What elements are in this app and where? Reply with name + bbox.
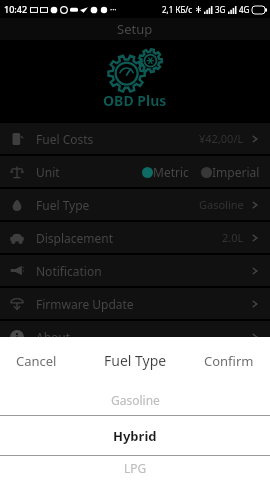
button[interactable]: Imperial [201, 164, 260, 180]
staticText: Gasoline [199, 197, 244, 212]
staticText: Fuel Costs [36, 131, 94, 147]
staticText: Setup [117, 20, 153, 38]
staticText: Confirm [204, 352, 254, 370]
other: Unit [10, 165, 24, 179]
staticText: Fuel Type [36, 197, 90, 213]
button[interactable]: Metric [142, 164, 189, 180]
staticText: Fuel Type [104, 351, 167, 370]
button[interactable]: Hybrid [0, 416, 270, 455]
button[interactable]: Confirm [188, 342, 270, 380]
staticText: About [36, 329, 71, 345]
staticText: ¥42,00/L [199, 131, 244, 146]
staticText: Cancel [16, 352, 57, 370]
staticText: LPG [124, 460, 147, 476]
button[interactable]: Notification [0, 255, 270, 286]
button[interactable]: Unit [0, 156, 270, 187]
other: Firmware update [10, 297, 24, 311]
staticText: 10:42 [4, 3, 28, 15]
staticText: Displacement [36, 230, 114, 246]
staticText: ··· [110, 4, 117, 15]
other: Displacement [10, 231, 24, 245]
staticText: Firmware Update [36, 296, 134, 312]
staticText: 2,1 КБ/c [162, 4, 193, 15]
staticText: 4G [239, 4, 250, 15]
staticText: Notification [36, 263, 102, 279]
button[interactable]: Firmware update [0, 288, 270, 319]
other: Notification [10, 264, 24, 278]
button[interactable]: Cancel [0, 342, 73, 380]
button[interactable]: LPG [0, 456, 270, 480]
staticText: Metric [153, 164, 189, 180]
staticText: OBD Plus [103, 91, 167, 110]
staticText: Imperial [212, 164, 260, 180]
staticText: 3G [215, 4, 226, 15]
button[interactable]: Displacement [0, 222, 270, 253]
other: About [10, 330, 24, 344]
staticText: Hybrid [113, 427, 157, 445]
staticText: 2.0L [222, 230, 244, 245]
button[interactable]: Fuel costs [0, 123, 270, 154]
other: Fuel costs [10, 132, 24, 146]
other: Fuel type [10, 198, 24, 212]
button[interactable]: About [0, 321, 270, 352]
button[interactable]: Fuel type [0, 189, 270, 220]
button[interactable]: Gasoline [0, 384, 270, 415]
staticText: Unit [36, 164, 60, 180]
staticText: Gasoline [111, 392, 160, 408]
